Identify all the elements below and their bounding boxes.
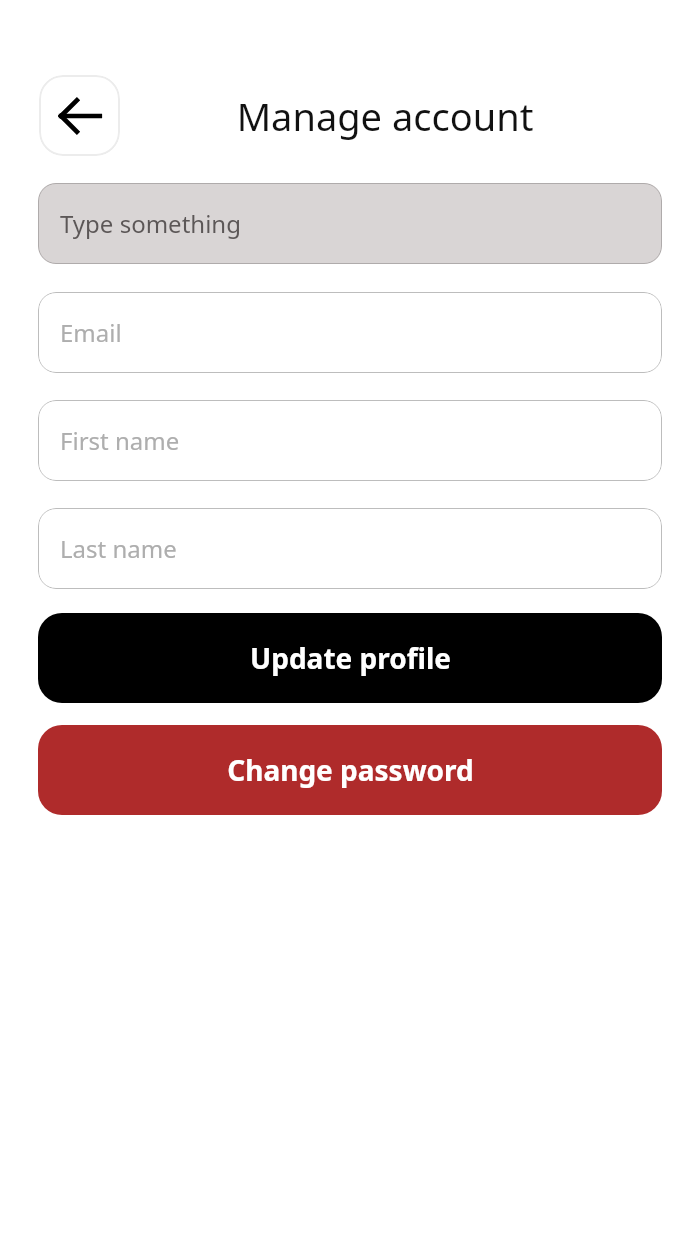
button[interactable]: First name — [38, 400, 662, 481]
button[interactable]: Last name — [38, 508, 662, 589]
staticText: Email — [60, 316, 122, 349]
staticText: Update profile — [250, 639, 451, 677]
staticText: First name — [60, 424, 180, 457]
button[interactable]: Change password — [38, 725, 662, 815]
button[interactable]: Type something — [38, 183, 662, 264]
button[interactable]: Back — [39, 75, 120, 156]
button[interactable]: Email — [38, 292, 662, 373]
button[interactable]: Update profile — [38, 613, 662, 703]
staticText: Type something — [60, 207, 241, 240]
staticText: Manage account — [130, 90, 640, 142]
staticText: Last name — [60, 532, 177, 565]
staticText: Change password — [227, 751, 474, 789]
